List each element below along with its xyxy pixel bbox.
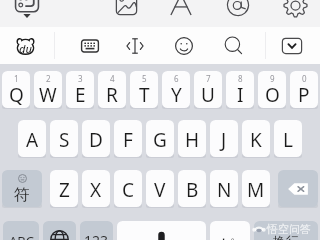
button[interactable]: Emoji bbox=[164, 27, 204, 64]
button[interactable]: G bbox=[146, 120, 174, 157]
staticText: 5 bbox=[142, 73, 147, 84]
staticText: 0 bbox=[302, 73, 307, 84]
button[interactable]: L bbox=[274, 120, 302, 157]
staticText: F bbox=[123, 127, 133, 153]
button[interactable]: J bbox=[210, 120, 238, 157]
staticText: Y bbox=[171, 82, 182, 108]
button[interactable]: Keyboard layout bbox=[70, 27, 110, 64]
button[interactable]: 3 bbox=[66, 71, 94, 108]
staticText: H bbox=[185, 127, 200, 153]
button[interactable]: A bbox=[18, 120, 46, 157]
button[interactable]: Text style bbox=[161, 0, 201, 27]
button[interactable]: 换行 bbox=[254, 221, 318, 240]
staticText: M bbox=[247, 177, 265, 203]
button[interactable]: V bbox=[146, 170, 174, 207]
button[interactable]: Z bbox=[50, 170, 78, 207]
button[interactable]: 7 bbox=[194, 71, 222, 108]
staticText: S bbox=[59, 127, 70, 153]
staticText: P bbox=[298, 82, 310, 108]
staticText: D bbox=[89, 127, 103, 153]
button[interactable] bbox=[278, 170, 318, 207]
staticText: Z bbox=[59, 177, 70, 203]
staticText: 123 bbox=[84, 231, 109, 240]
button[interactable] bbox=[117, 221, 206, 240]
button[interactable]: D bbox=[82, 120, 110, 157]
button[interactable]: 1 bbox=[2, 71, 30, 108]
button[interactable]: Stickers bbox=[7, 0, 47, 27]
staticText: X bbox=[90, 177, 102, 203]
staticText: 换行 bbox=[273, 233, 299, 240]
staticText: E bbox=[75, 82, 86, 108]
button[interactable]: F bbox=[114, 120, 142, 157]
staticText: L bbox=[283, 127, 293, 153]
button[interactable] bbox=[43, 221, 76, 240]
staticText: I bbox=[237, 82, 244, 108]
staticText: 1 bbox=[14, 73, 19, 84]
button[interactable]: 4 bbox=[98, 71, 126, 108]
staticText: V bbox=[154, 177, 166, 203]
staticText: N bbox=[217, 177, 232, 203]
staticText: B bbox=[186, 177, 199, 203]
staticText: 2 bbox=[46, 73, 51, 84]
staticText: 7 bbox=[206, 73, 211, 84]
button[interactable]: C bbox=[114, 170, 142, 207]
staticText: 4 bbox=[110, 73, 115, 84]
button[interactable]: Move cursor bbox=[115, 27, 155, 64]
button[interactable]: ABC bbox=[3, 221, 39, 240]
staticText: A bbox=[26, 127, 39, 153]
button[interactable]: ，。 bbox=[210, 221, 250, 240]
button[interactable]: Search bbox=[214, 27, 254, 64]
staticText: T bbox=[139, 82, 150, 108]
staticText: Q bbox=[9, 82, 24, 108]
button[interactable]: 5 bbox=[130, 71, 158, 108]
staticText: W bbox=[39, 82, 57, 108]
button[interactable]: Hide keyboard bbox=[272, 27, 312, 64]
staticText: 符 bbox=[14, 185, 30, 205]
staticText: U bbox=[201, 82, 215, 108]
staticText: G bbox=[153, 127, 167, 153]
staticText: K bbox=[250, 127, 262, 153]
staticText: ，。 bbox=[217, 227, 243, 240]
button[interactable]: 符 bbox=[2, 170, 42, 207]
staticText: O bbox=[265, 82, 280, 108]
staticText: J bbox=[221, 127, 227, 153]
button[interactable]: 8 bbox=[226, 71, 254, 108]
button[interactable]: 2 bbox=[34, 71, 62, 108]
staticText: du bbox=[19, 41, 32, 56]
button[interactable]: K bbox=[242, 120, 270, 157]
staticText: ABC bbox=[9, 232, 34, 240]
staticText: 3 bbox=[78, 73, 83, 84]
staticText: 悟空问答 bbox=[267, 222, 311, 236]
button[interactable]: M bbox=[242, 170, 270, 207]
button[interactable]: Baidu input bbox=[5, 27, 45, 64]
button[interactable]: N bbox=[210, 170, 238, 207]
button[interactable]: X bbox=[82, 170, 110, 207]
button[interactable]: Image bbox=[106, 0, 146, 27]
button[interactable]: 6 bbox=[162, 71, 190, 108]
staticText: 8 bbox=[238, 73, 243, 84]
button[interactable]: 9 bbox=[258, 71, 286, 108]
button[interactable]: H bbox=[178, 120, 206, 157]
staticText: 9 bbox=[270, 73, 275, 84]
button[interactable]: S bbox=[50, 120, 78, 157]
staticText: C bbox=[122, 177, 135, 203]
button[interactable]: B bbox=[178, 170, 206, 207]
staticText: 6 bbox=[174, 73, 179, 84]
button[interactable]: Mention bbox=[218, 0, 258, 27]
button[interactable]: 0 bbox=[290, 71, 318, 108]
staticText: R bbox=[106, 82, 118, 108]
button[interactable]: 123 bbox=[80, 221, 113, 240]
button[interactable]: Settings bbox=[275, 0, 315, 27]
